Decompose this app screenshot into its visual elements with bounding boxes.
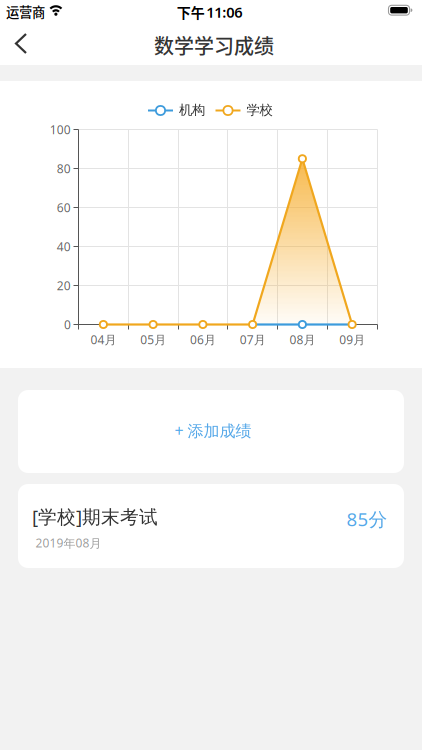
staticText: + 添加成绩 [174,420,251,441]
button[interactable]: + 添加成绩 [18,390,404,473]
staticText: 11:06 [206,2,242,22]
staticText: 20 [57,277,71,293]
staticText: 2019年08月 [35,535,101,551]
staticText: 学校 [246,102,272,118]
staticText: 100 [50,121,71,137]
staticText: 08月 [289,331,315,347]
button[interactable]: [学校]期末考试 [18,484,404,568]
staticText: 09月 [339,331,365,347]
staticText: [学校]期末考试 [32,504,158,529]
staticText: 80 [57,160,71,176]
staticText: 机构 [179,102,205,118]
staticText: 0 [64,316,71,332]
staticText: 60 [57,199,71,215]
staticText: 85分 [346,507,387,531]
staticText: 06月 [190,331,216,347]
staticText: 下午 [177,2,205,22]
button[interactable]: Back [0,26,44,62]
staticText: 05月 [140,331,166,347]
staticText: 04月 [90,331,116,347]
staticText: 运营商 [6,2,45,21]
staticText: 40 [57,238,71,254]
staticText: 数学学习成绩 [154,30,274,59]
staticText: 07月 [240,331,266,347]
